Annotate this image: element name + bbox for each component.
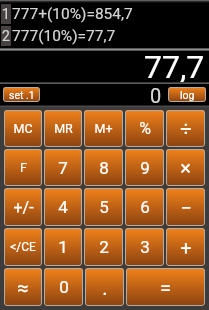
staticText: 7 (58, 158, 68, 178)
staticText: MC (13, 121, 33, 136)
staticText: 5 (99, 197, 109, 217)
staticText: set .1 (9, 89, 35, 101)
button[interactable]: log (168, 87, 206, 102)
staticText: 77,7 (144, 48, 205, 82)
staticText: +/- (13, 198, 34, 217)
button[interactable]: 1 (44, 228, 82, 266)
button[interactable]: 7 (44, 149, 82, 186)
staticText: F (20, 160, 27, 175)
button[interactable]: 8 (84, 149, 123, 186)
staticText: 777+(10%)=854,7 (12, 5, 133, 23)
staticText: × (180, 156, 191, 179)
staticText: M+ (94, 121, 113, 136)
staticText: % (139, 119, 151, 138)
button[interactable]: . (85, 268, 124, 306)
staticText: 1 (2, 6, 10, 22)
staticText: + (180, 236, 192, 259)
staticText: . (102, 276, 108, 299)
button[interactable]: 2 (0, 26, 209, 46)
button[interactable]: set .1 (3, 87, 40, 102)
staticText: 2 (2, 28, 10, 44)
button[interactable]: % (125, 110, 164, 147)
staticText: 0 (59, 277, 69, 297)
button[interactable]: 3 (125, 228, 164, 266)
staticText: 6 (140, 197, 150, 217)
staticText: 1 (58, 237, 68, 257)
staticText: ≈ (17, 276, 29, 299)
staticText: ÷ (180, 117, 192, 140)
button[interactable]: MR (44, 110, 82, 147)
button[interactable]: 4 (44, 188, 82, 226)
button[interactable]: 0 (44, 268, 83, 306)
staticText: 777(10%)=77,7 (12, 27, 116, 45)
button[interactable]: 1 (0, 4, 209, 24)
button[interactable]: ≈ (4, 268, 42, 306)
button[interactable]: 6 (125, 188, 164, 226)
staticText: 4 (58, 197, 68, 217)
staticText: 9 (140, 158, 150, 178)
staticText: log (180, 89, 195, 101)
button[interactable]: </CE (4, 228, 42, 266)
staticText: 0 (150, 84, 162, 105)
button[interactable]: 9 (125, 149, 164, 186)
staticText: 3 (140, 237, 150, 257)
button[interactable]: − (166, 188, 205, 226)
staticText: = (160, 276, 171, 299)
staticText: MR (54, 121, 73, 136)
button[interactable]: M+ (84, 110, 123, 147)
button[interactable]: 2 (84, 228, 123, 266)
button[interactable]: 5 (84, 188, 123, 226)
staticText: 2 (99, 237, 109, 257)
staticText: − (180, 196, 192, 219)
staticText: 8 (99, 158, 109, 178)
staticText: </CE (10, 240, 36, 254)
button[interactable]: F (4, 149, 42, 186)
button[interactable]: × (166, 149, 205, 186)
button[interactable]: ÷ (166, 110, 205, 147)
button[interactable]: = (126, 268, 205, 306)
button[interactable]: +/- (4, 188, 42, 226)
button[interactable]: + (166, 228, 205, 266)
button[interactable]: MC (4, 110, 42, 147)
